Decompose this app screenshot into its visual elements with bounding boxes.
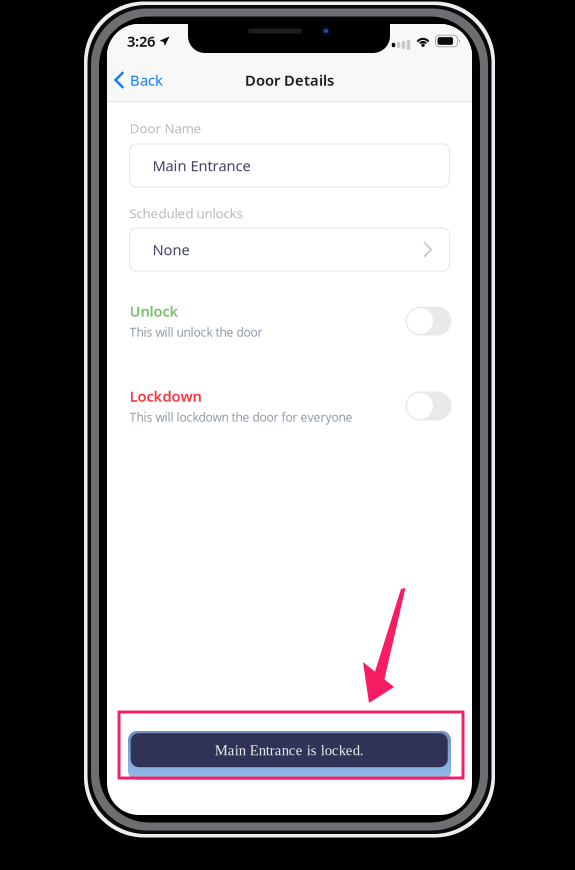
staticText: 3:26 <box>127 31 155 51</box>
button[interactable]: Unlock <box>405 306 451 335</box>
staticText: None <box>152 239 189 259</box>
button[interactable]: Main Entrance <box>129 144 449 187</box>
staticText: This will unlock the door <box>129 324 262 340</box>
button[interactable]: None <box>129 228 449 271</box>
staticText: Main Entrance is locked. <box>215 742 364 758</box>
button[interactable]: Lockdown <box>405 391 451 420</box>
button[interactable]: Back <box>107 58 173 102</box>
staticText: Unlock <box>129 301 178 321</box>
staticText: Door Name <box>129 119 201 137</box>
staticText: Main Entrance <box>152 155 250 175</box>
staticText: Back <box>130 70 163 90</box>
staticText: This will lockdown the door for everyone <box>129 409 352 425</box>
staticText: Lockdown <box>129 386 201 406</box>
staticText: Door Details <box>245 70 334 90</box>
button[interactable]: Main Entrance is locked. <box>128 731 451 780</box>
staticText: Scheduled unlocks <box>129 204 242 222</box>
